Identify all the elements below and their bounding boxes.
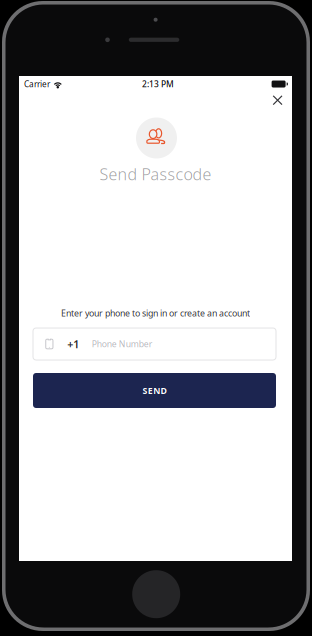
staticText: SEND — [142, 384, 166, 396]
staticText: Enter your phone to sign in or create an… — [61, 307, 250, 319]
staticText: 2:13 PM — [142, 78, 174, 90]
staticText: Carrier — [24, 78, 50, 90]
button[interactable]: Close — [264, 87, 292, 113]
staticText: Phone Number — [92, 338, 153, 350]
staticText: +1 — [67, 337, 79, 351]
staticText: Send Passcode — [99, 163, 211, 185]
button[interactable]: SEND — [33, 373, 276, 408]
